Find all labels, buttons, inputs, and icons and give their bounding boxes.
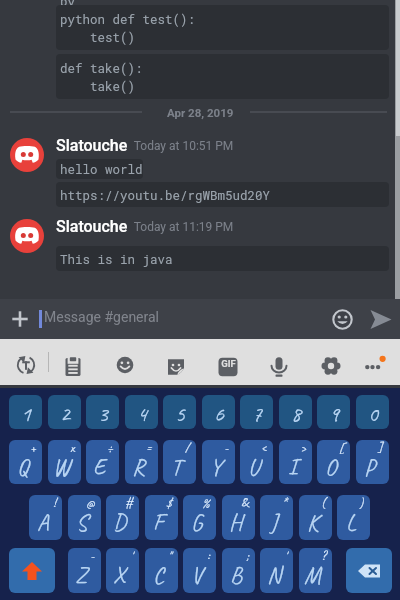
button[interactable]: Send [360, 299, 400, 339]
button[interactable]: J [260, 495, 293, 540]
button[interactable]: Avatar [10, 138, 44, 172]
staticText: test() [60, 29, 136, 45]
staticText: : [207, 548, 210, 564]
staticText: B [230, 561, 242, 590]
staticText: % [202, 495, 210, 511]
staticText: - [90, 548, 95, 564]
button[interactable]: Add attachment [0, 299, 40, 339]
staticText: + [30, 440, 36, 456]
button[interactable]: Emoji [322, 299, 362, 339]
button[interactable]: F [145, 495, 178, 540]
button[interactable]: More options [359, 347, 391, 379]
button[interactable]: U [240, 440, 273, 484]
staticText: W [53, 453, 70, 482]
button[interactable]: N [260, 548, 293, 593]
button[interactable]: S [68, 495, 101, 540]
staticText: / [185, 440, 190, 456]
staticText: < [261, 440, 267, 456]
button[interactable]: X [106, 548, 139, 593]
button[interactable]: L [337, 495, 370, 540]
button[interactable]: W [48, 440, 81, 484]
button[interactable]: K [299, 495, 332, 540]
button[interactable]: 0 [356, 395, 389, 429]
button[interactable]: GIF [212, 351, 244, 383]
button[interactable]: 2 [48, 395, 81, 429]
staticText: x [70, 440, 75, 456]
staticText: V [191, 561, 203, 590]
staticText: F [153, 508, 164, 537]
button[interactable]: 9 [317, 395, 350, 429]
button[interactable]: Emoji [109, 349, 141, 381]
button[interactable]: E [86, 440, 119, 484]
button[interactable]: T [163, 440, 196, 484]
staticText: [ [339, 440, 344, 456]
staticText: def take(): [60, 60, 143, 76]
button[interactable]: A [29, 495, 62, 540]
button[interactable]: Voice input [263, 351, 295, 383]
staticText: ; [246, 548, 249, 564]
staticText: L [346, 508, 356, 537]
button[interactable]: 6 [202, 395, 235, 429]
button[interactable]: D [106, 495, 139, 540]
staticText: ÷ [107, 440, 113, 456]
button[interactable]: H [222, 495, 255, 540]
staticText: U [248, 453, 260, 482]
staticText: ! [53, 495, 56, 511]
button[interactable]: 1 [9, 395, 42, 429]
staticText: & [241, 495, 249, 511]
staticText: 5 [175, 400, 185, 428]
button[interactable]: R [125, 440, 158, 484]
staticText: 2 [60, 400, 70, 428]
button[interactable]: O [317, 440, 350, 484]
staticText: C [153, 561, 164, 590]
staticText: O [325, 453, 337, 482]
button[interactable]: Clipboard [57, 351, 89, 383]
staticText: 9 [329, 400, 339, 428]
button[interactable]: Backspace [346, 548, 392, 593]
staticText: # [125, 495, 133, 511]
button[interactable]: Avatar [10, 219, 44, 253]
button[interactable]: Y [202, 440, 235, 484]
button[interactable]: Slatouche [56, 217, 234, 236]
button[interactable]: Settings [315, 350, 347, 382]
staticText: python def test(): [60, 11, 196, 27]
button[interactable]: Shift [9, 548, 55, 593]
button[interactable]: 7 [240, 395, 273, 429]
staticText: E [93, 453, 106, 482]
staticText: 7 [252, 400, 262, 428]
button[interactable]: I [279, 440, 312, 484]
staticText: py [60, 0, 76, 9]
staticText: M [304, 561, 321, 590]
staticText: Message #general [44, 309, 160, 325]
button[interactable]: Stickers [160, 351, 192, 383]
staticText: This is in java [60, 251, 173, 267]
staticText: R [132, 453, 145, 482]
button[interactable]: M [299, 548, 332, 593]
staticText: 3 [98, 400, 108, 428]
staticText: - [224, 440, 229, 456]
button[interactable]: 4 [125, 395, 158, 429]
button[interactable]: 3 [86, 395, 119, 429]
staticText: Q [17, 453, 29, 482]
button[interactable]: V [183, 548, 216, 593]
staticText: J [270, 508, 278, 537]
staticText: = [146, 440, 152, 456]
button[interactable]: G [183, 495, 216, 540]
button[interactable]: P [356, 440, 389, 484]
staticText: N [267, 561, 281, 590]
button[interactable]: Translate [10, 349, 42, 381]
staticText: 1 [21, 400, 31, 428]
staticText: K [307, 508, 319, 537]
button[interactable]: Slatouche [56, 136, 234, 155]
staticText: Slatouche [56, 217, 128, 236]
button[interactable]: 5 [163, 395, 196, 429]
staticText: Apr 28, 2019 [167, 106, 234, 119]
button[interactable]: Z [68, 548, 101, 593]
button[interactable]: Q [9, 440, 42, 484]
button[interactable]: C [145, 548, 178, 593]
button[interactable]: 8 [279, 395, 312, 429]
button[interactable]: B [222, 548, 255, 593]
staticText: ? [321, 548, 326, 564]
